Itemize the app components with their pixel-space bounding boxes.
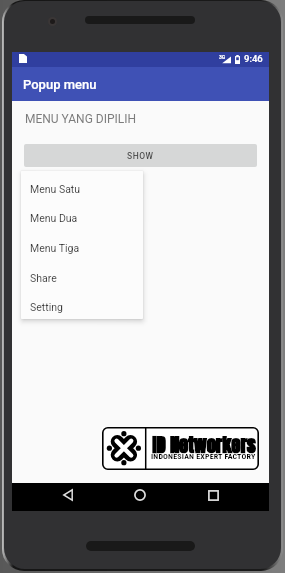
staticText: Popup menu: [23, 77, 97, 92]
staticText: Setting: [30, 301, 63, 313]
button[interactable]: Share: [21, 263, 143, 293]
button[interactable]: Recent apps: [189, 481, 237, 509]
button[interactable]: Menu Tiga: [21, 233, 143, 263]
staticText: ID Networkers: [152, 431, 256, 459]
button[interactable]: Setting: [21, 292, 143, 319]
staticText: Share: [30, 272, 57, 284]
staticText: INDONESIAN EXPERT FACTORY: [151, 452, 256, 461]
button[interactable]: Menu Dua: [21, 203, 143, 233]
staticText: Menu Tiga: [30, 242, 80, 254]
staticText: 3G: [219, 54, 226, 60]
button[interactable]: SHOW: [24, 144, 257, 167]
button[interactable]: Home: [116, 481, 164, 509]
staticText: SHOW: [127, 151, 154, 161]
staticText: 9:46: [244, 53, 263, 64]
button[interactable]: Back: [44, 481, 92, 509]
staticText: Menu Satu: [30, 183, 81, 195]
staticText: Menu Dua: [30, 212, 78, 224]
staticText: MENU YANG DIPILIH: [25, 112, 137, 126]
button[interactable]: Menu Satu: [21, 174, 143, 204]
